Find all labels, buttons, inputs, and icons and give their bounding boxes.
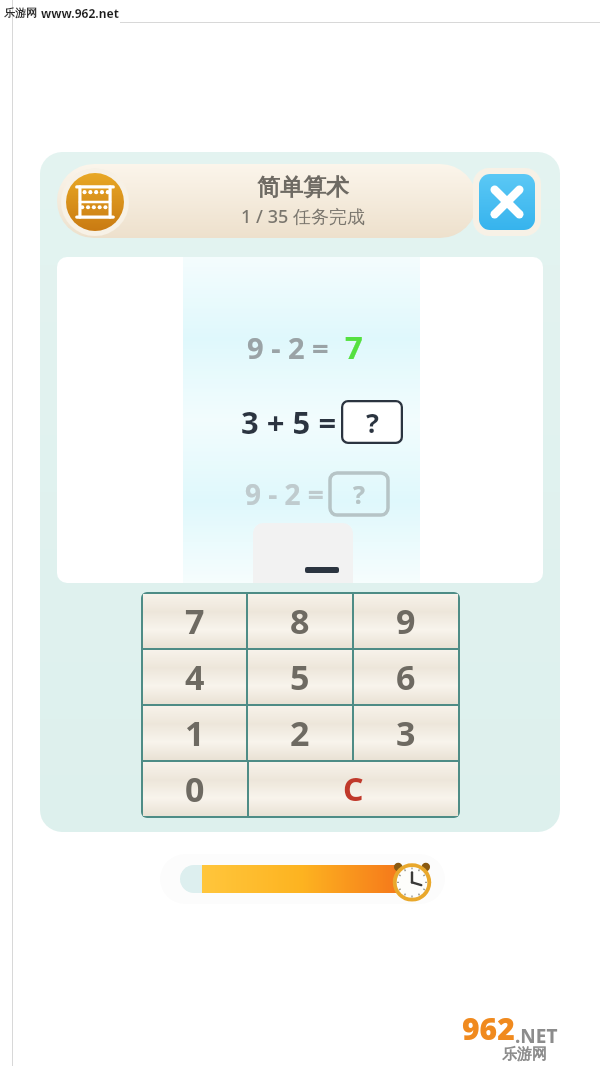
staticText: .NET — [515, 1023, 558, 1049]
button[interactable]: Close — [473, 168, 541, 236]
button[interactable]: 6 — [354, 650, 458, 704]
button[interactable]: 9 — [354, 594, 458, 648]
button[interactable]: ? — [330, 473, 388, 515]
staticText: 9 - 2 = — [247, 328, 329, 367]
staticText: 9 — [396, 598, 416, 644]
button[interactable] — [253, 523, 353, 583]
staticText: 乐游网 — [4, 6, 37, 20]
staticText: 3 + 5 = — [241, 401, 337, 443]
staticText: 0 — [185, 766, 205, 812]
button[interactable]: 0 — [143, 762, 247, 816]
staticText: 1 / 35 任务完成 — [241, 204, 365, 229]
button[interactable]: 4 — [143, 650, 246, 704]
staticText: 9 - 2 = — [245, 475, 324, 513]
staticText: 7 — [185, 598, 205, 644]
staticText: ? — [353, 477, 365, 511]
staticText: 5 — [290, 654, 310, 700]
staticText: 962 — [462, 1008, 515, 1049]
other: Timer — [388, 856, 436, 904]
staticText: 2 — [290, 710, 310, 756]
staticText: 7 — [345, 326, 363, 368]
staticText: 8 — [290, 598, 310, 644]
button[interactable]: 5 — [248, 650, 352, 704]
button[interactable]: C — [249, 762, 458, 816]
staticText: 3 — [396, 710, 416, 756]
button[interactable]: 8 — [248, 594, 352, 648]
staticText: 1 — [185, 710, 205, 756]
button[interactable]: 1 — [143, 706, 246, 760]
staticText: C — [343, 767, 364, 811]
button[interactable]: 简单算术 — [57, 164, 477, 238]
staticText: www.962.net — [41, 5, 119, 21]
staticText: ? — [366, 404, 379, 441]
button[interactable]: 7 — [143, 594, 246, 648]
staticText: 乐游网 — [502, 1045, 547, 1064]
button[interactable]: 2 — [248, 706, 352, 760]
button[interactable]: 3 — [354, 706, 458, 760]
staticText: 简单算术 — [257, 173, 349, 202]
button[interactable]: ? — [341, 400, 403, 444]
staticText: 6 — [396, 654, 416, 700]
button[interactable]: Arithmetic — [61, 168, 129, 236]
staticText: 4 — [185, 654, 205, 700]
